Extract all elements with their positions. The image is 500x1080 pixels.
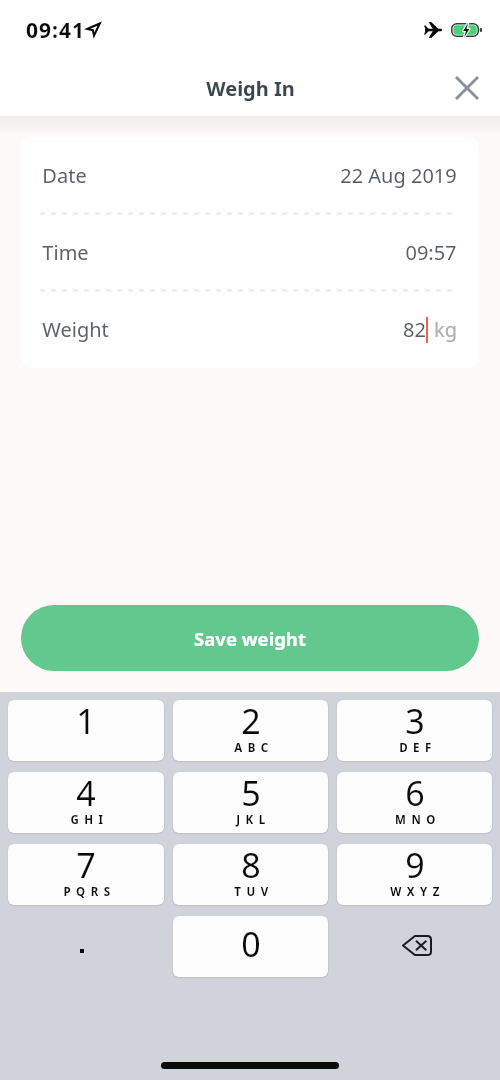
- button[interactable]: Time: [21, 214, 479, 290]
- button[interactable]: Weight: [21, 291, 479, 368]
- button[interactable]: Date: [21, 137, 479, 213]
- staticText: MNO: [395, 812, 441, 828]
- staticText: DEF: [399, 740, 437, 756]
- staticText: 3: [405, 700, 425, 744]
- button[interactable]: 6: [337, 772, 492, 833]
- staticText: 2: [241, 700, 261, 744]
- staticText: 09:57: [405, 239, 457, 266]
- staticText: WXYZ: [390, 884, 445, 900]
- button[interactable]: Backspace: [337, 916, 492, 977]
- button[interactable]: 4: [8, 772, 164, 833]
- button[interactable]: 2: [173, 700, 328, 761]
- staticText: 6: [405, 772, 425, 816]
- staticText: 82: [403, 316, 426, 343]
- button[interactable]: 9: [337, 844, 492, 905]
- staticText: 8: [241, 844, 261, 888]
- staticText: 5: [241, 772, 261, 816]
- button[interactable]: 1: [8, 700, 164, 761]
- button[interactable]: 3: [337, 700, 492, 761]
- staticText: 4: [76, 772, 96, 816]
- button[interactable]: Save weight: [21, 605, 479, 671]
- staticText: GHI: [70, 812, 109, 828]
- staticText: Weight: [42, 316, 109, 343]
- button[interactable]: Decimal point: [8, 916, 164, 977]
- staticText: PQRS: [63, 884, 116, 900]
- staticText: Weigh In: [206, 75, 295, 102]
- staticText: JKL: [236, 812, 271, 828]
- staticText: 7: [76, 844, 96, 888]
- button[interactable]: Close: [443, 63, 491, 111]
- staticText: 0: [241, 921, 261, 967]
- button[interactable]: 7: [8, 844, 164, 905]
- staticText: 09:41: [26, 16, 85, 45]
- button[interactable]: 0: [173, 916, 328, 977]
- staticText: Date: [42, 162, 87, 189]
- button[interactable]: 5: [173, 772, 328, 833]
- staticText: 1: [76, 700, 96, 744]
- staticText: Save weight: [194, 626, 306, 651]
- staticText: 22 Aug 2019: [340, 162, 457, 189]
- staticText: ABC: [234, 740, 274, 756]
- staticText: 9: [405, 844, 425, 888]
- staticText: Time: [42, 239, 89, 266]
- button[interactable]: 8: [173, 844, 328, 905]
- staticText: kg: [434, 316, 457, 343]
- staticText: TUV: [234, 884, 274, 900]
